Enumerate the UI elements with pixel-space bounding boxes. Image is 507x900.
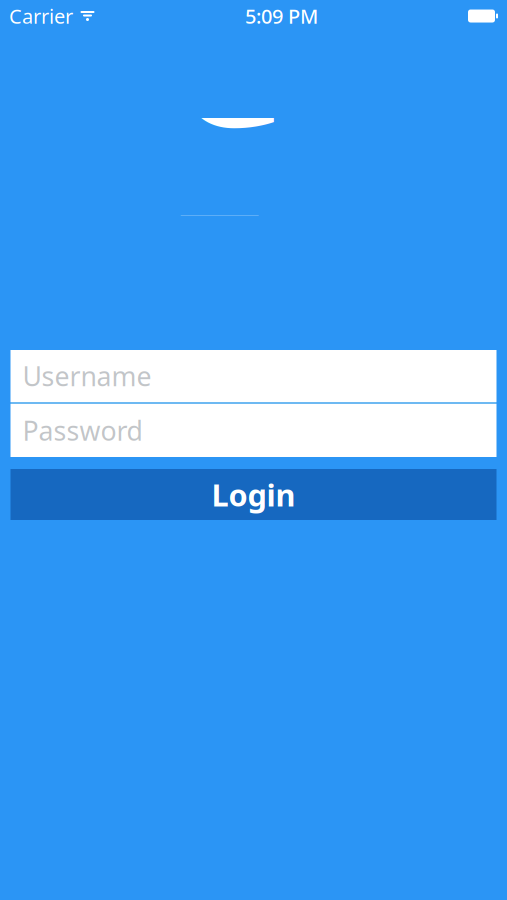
staticText: Username	[22, 358, 151, 394]
button[interactable]: Login	[10, 469, 496, 520]
staticText: Login	[211, 474, 295, 515]
staticText: Carrier	[9, 3, 73, 29]
staticText: Password	[22, 413, 142, 448]
staticText: GT	[177, 0, 330, 358]
staticText: 5:09 PM	[245, 3, 318, 29]
